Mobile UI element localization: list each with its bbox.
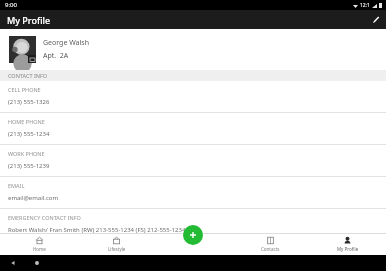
staticText: Home bbox=[33, 246, 46, 252]
staticText: My Profile bbox=[7, 14, 51, 26]
staticText: George Walsh bbox=[43, 38, 89, 48]
staticText: Apt. 2A bbox=[43, 51, 69, 61]
staticText: email@email.com bbox=[8, 194, 59, 202]
staticText: CONTACT INFO bbox=[8, 72, 48, 79]
staticText: (213) 555-1234 bbox=[8, 130, 50, 138]
button[interactable]: WORK PHONE bbox=[0, 145, 386, 177]
staticText: 9:00 bbox=[5, 1, 17, 9]
button[interactable]: Add bbox=[183, 225, 203, 245]
staticText: CELL PHONE bbox=[8, 86, 41, 93]
button[interactable]: Contacts bbox=[232, 236, 309, 252]
button[interactable]: Home bbox=[0, 236, 78, 252]
button[interactable]: Edit profile bbox=[367, 10, 386, 29]
staticText: WORK PHONE bbox=[8, 150, 45, 157]
staticText: My Profile bbox=[337, 246, 359, 252]
button[interactable]: My Profile bbox=[309, 236, 386, 252]
staticText: Lifestyle bbox=[108, 246, 126, 252]
staticText: 12:1 bbox=[360, 2, 370, 9]
staticText: Robert Walsh/ Fran Smith (RW) 213-555-12… bbox=[8, 226, 186, 233]
button[interactable]: George Walsh bbox=[0, 29, 386, 70]
staticText: EMERGENCY CONTACT INFO bbox=[8, 214, 81, 221]
staticText: Contacts bbox=[261, 246, 280, 252]
button[interactable]: Back bbox=[10, 260, 16, 266]
staticText: EMAIL bbox=[8, 182, 25, 189]
button[interactable]: HOME PHONE bbox=[0, 113, 386, 145]
button[interactable]: Lifestyle bbox=[78, 236, 155, 252]
staticText: (213) 555-1239 bbox=[8, 162, 50, 170]
button[interactable]: CELL PHONE bbox=[0, 81, 386, 113]
button[interactable]: Home bbox=[34, 260, 40, 266]
staticText: HOME PHONE bbox=[8, 118, 45, 125]
staticText: (213) 555-1326 bbox=[8, 98, 50, 106]
button[interactable]: EMERGENCY CONTACT INFO bbox=[0, 209, 386, 233]
button[interactable]: EMAIL bbox=[0, 177, 386, 209]
